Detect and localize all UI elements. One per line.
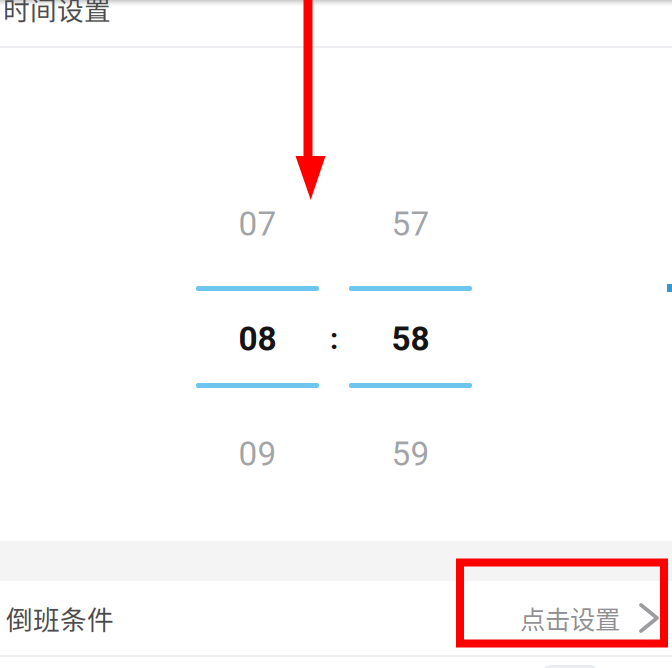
button[interactable]: 倒班条件 xyxy=(0,581,672,655)
staticText: : xyxy=(330,322,338,356)
button[interactable]: 57 xyxy=(349,160,472,518)
staticText: 09 xyxy=(238,434,276,474)
staticText: 58 xyxy=(391,319,429,359)
staticText: 倒班条件 xyxy=(6,599,114,637)
staticText: 07 xyxy=(238,204,276,244)
button[interactable]: 07 xyxy=(196,160,319,518)
staticText: 59 xyxy=(391,434,429,474)
staticText: 57 xyxy=(391,204,429,244)
staticText: 点击设置 xyxy=(520,600,620,636)
staticText: 时间设置 xyxy=(3,0,111,28)
staticText: 08 xyxy=(238,319,276,359)
